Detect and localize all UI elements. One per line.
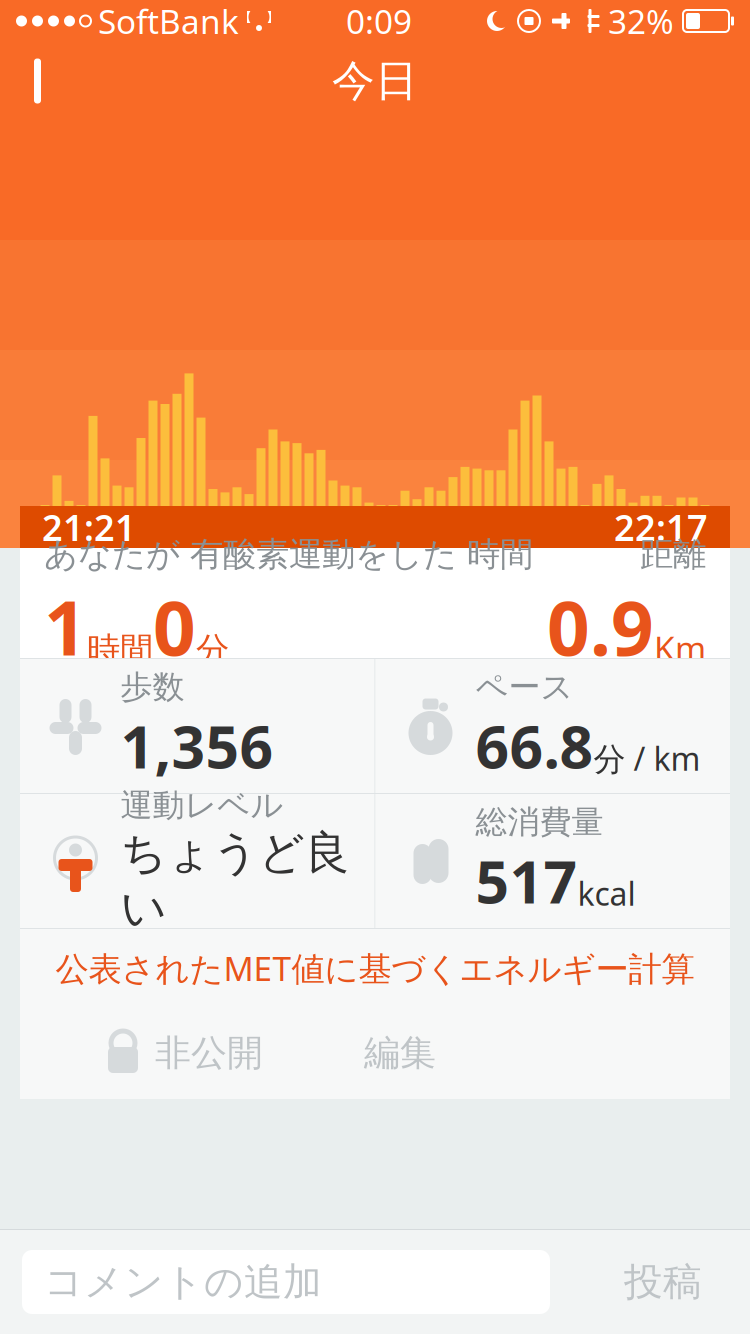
staticText: 21:21	[42, 503, 136, 551]
staticText: 22:17	[614, 503, 708, 551]
button[interactable]: 非公開	[20, 1007, 320, 1099]
button[interactable]: 投稿	[598, 1250, 728, 1314]
staticText: kcal	[577, 872, 635, 915]
staticText: 0:09	[346, 0, 412, 43]
staticText: ちょうど良い	[120, 825, 349, 936]
staticText: 66.8	[475, 707, 593, 785]
staticText: 編集	[364, 1031, 436, 1075]
staticText: 非公開	[155, 1031, 263, 1075]
staticText: 0	[153, 577, 196, 676]
button[interactable]: 公表されたMET値に基づくエネルギー計算	[20, 929, 730, 1007]
staticText: 分 / km	[593, 737, 700, 780]
staticText: 分	[196, 629, 229, 670]
staticText: 1,356	[120, 707, 273, 785]
staticText: 0.9	[547, 577, 654, 676]
staticText: SoftBank	[98, 0, 239, 43]
button[interactable]: 総消費量	[375, 794, 729, 928]
staticText: 運動レベル	[120, 786, 283, 825]
button[interactable]: 編集	[320, 1007, 480, 1099]
button[interactable]: 運動レベル	[20, 794, 374, 928]
button[interactable]: ペース	[375, 659, 729, 793]
staticText: Km	[654, 626, 706, 670]
staticText: 時間	[87, 629, 153, 670]
staticText: 1	[44, 577, 87, 676]
button[interactable]: コメントの追加	[22, 1250, 550, 1314]
button[interactable]: 戻る	[0, 42, 76, 120]
staticText: 投稿	[624, 1258, 702, 1306]
staticText: 517	[475, 842, 577, 920]
staticText: 距離	[640, 534, 706, 575]
staticText: コメントの追加	[44, 1258, 322, 1306]
staticText: 今日	[332, 55, 418, 107]
staticText: あなたが 有酸素運動をした 時間	[44, 534, 533, 575]
staticText: 歩数	[120, 667, 184, 707]
button[interactable]: 歩数	[20, 659, 374, 793]
staticText: 32%	[608, 0, 674, 43]
staticText: 総消費量	[475, 802, 603, 842]
staticText: 公表されたMET値に基づくエネルギー計算	[55, 946, 694, 990]
staticText: ペース	[475, 667, 573, 707]
